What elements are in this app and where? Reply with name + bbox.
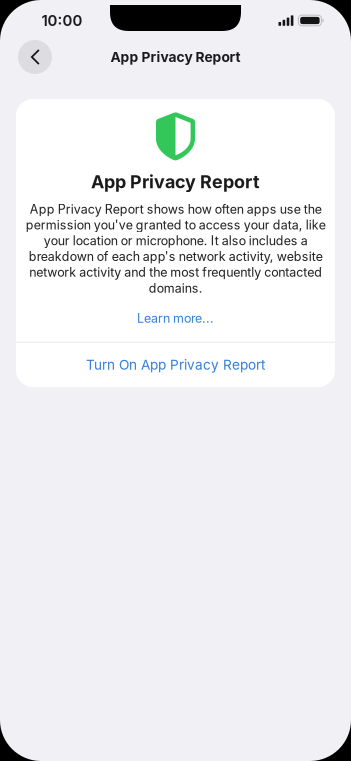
staticText: App Privacy Report shows how often apps … (25, 202, 325, 296)
button[interactable]: Learn more... (16, 296, 335, 342)
staticText: 10:00 (41, 11, 82, 30)
staticText: App Privacy Report (91, 171, 260, 193)
button[interactable]: Back (18, 40, 52, 74)
staticText: Turn On App Privacy Report (86, 357, 265, 373)
staticText: Learn more... (137, 311, 214, 326)
button[interactable]: Turn On App Privacy Report (16, 343, 335, 387)
staticText: App Privacy Report (110, 49, 240, 65)
